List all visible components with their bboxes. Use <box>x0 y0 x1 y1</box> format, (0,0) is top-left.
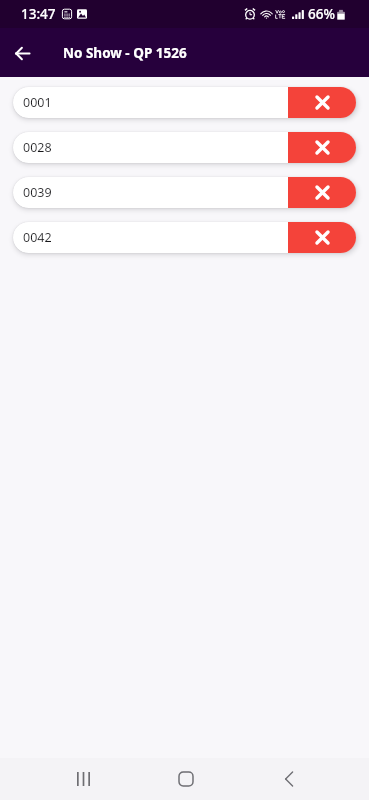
button[interactable]: Home <box>162 758 210 800</box>
button[interactable]: 0001 <box>13 87 356 118</box>
staticText: 0001 <box>23 94 52 111</box>
button[interactable]: 0028 <box>13 132 356 163</box>
staticText: 66% <box>308 5 335 23</box>
staticText: No Show - QP 1526 <box>63 44 187 62</box>
button[interactable]: Back <box>265 758 313 800</box>
staticText: 0028 <box>23 139 52 156</box>
staticText: 0042 <box>23 229 52 246</box>
button[interactable]: Remove <box>288 177 356 208</box>
button[interactable]: Remove <box>288 132 356 163</box>
button[interactable]: 0042 <box>13 222 356 253</box>
staticText: 0039 <box>23 184 52 201</box>
button[interactable]: Remove <box>288 87 356 118</box>
button[interactable]: 0039 <box>13 177 356 208</box>
button[interactable]: Remove <box>288 222 356 253</box>
button[interactable]: Back <box>5 36 39 70</box>
button[interactable]: Recents <box>59 758 107 800</box>
staticText: 13:47 <box>21 5 56 23</box>
